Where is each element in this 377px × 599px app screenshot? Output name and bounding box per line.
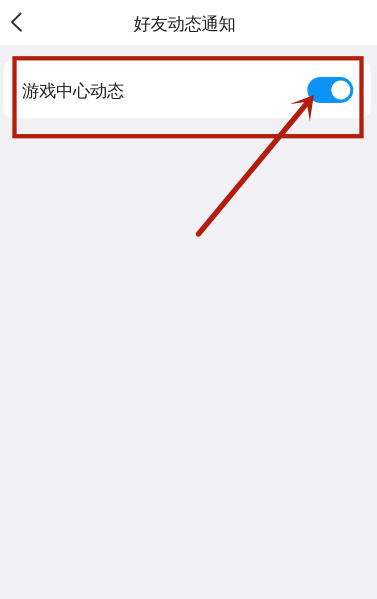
button[interactable]: 游戏中心动态开关	[307, 76, 353, 102]
staticText: 游戏中心动态	[22, 80, 124, 102]
staticText: 好友动态通知	[133, 13, 235, 35]
button[interactable]: 返回	[0, 0, 32, 44]
button[interactable]: 游戏中心动态	[3, 60, 370, 118]
